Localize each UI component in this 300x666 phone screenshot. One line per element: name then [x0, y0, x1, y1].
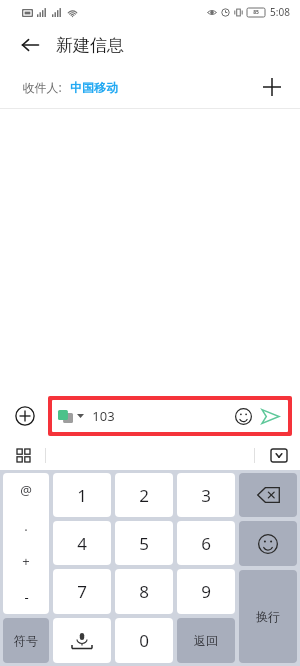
staticText: 6 [201, 532, 211, 555]
button[interactable] [53, 618, 111, 663]
staticText: 中国移动 [70, 80, 118, 95]
staticText: 7 [77, 580, 87, 603]
staticText: 0 [139, 629, 149, 652]
button[interactable]: 6 [177, 521, 235, 565]
staticText: 4 [77, 532, 87, 555]
button[interactable]: Keyboard layouts [10, 442, 36, 468]
button[interactable]: 8 [115, 569, 173, 614]
staticText: 收件人: [22, 79, 62, 95]
button[interactable]: 103 [52, 400, 288, 432]
staticText: 9 [201, 580, 211, 603]
button[interactable]: Attach [8, 399, 42, 433]
button[interactable]: 返回 [177, 618, 235, 663]
staticText: 5:08 [270, 5, 290, 19]
button[interactable]: @ [3, 473, 49, 614]
button[interactable]: Hide keyboard [266, 442, 292, 468]
staticText: 1 [77, 484, 87, 507]
staticText: 返回 [194, 633, 218, 648]
button[interactable]: Emoji [239, 521, 297, 566]
staticText: 8 [139, 580, 149, 603]
button[interactable]: 符号 [3, 618, 49, 663]
button[interactable]: Add recipient [256, 71, 288, 103]
other: Emoji [258, 534, 278, 554]
staticText: + [22, 552, 30, 570]
staticText: 5 [139, 532, 149, 555]
other: Backspace [257, 487, 280, 503]
button[interactable]: 1 [53, 473, 111, 517]
button[interactable]: 2 [115, 473, 173, 517]
staticText: 103 [92, 407, 115, 425]
staticText: @ [20, 481, 32, 499]
button[interactable]: 7 [53, 569, 111, 614]
staticText: 换行 [256, 609, 280, 624]
button[interactable]: 3 [177, 473, 235, 517]
button[interactable]: Back [16, 31, 44, 59]
button[interactable]: 0 [115, 618, 173, 663]
button[interactable]: Send [258, 404, 282, 428]
button[interactable]: Emoji [231, 404, 255, 428]
staticText: 新建信息 [56, 35, 124, 56]
staticText: 3 [201, 484, 211, 507]
staticText: - [24, 588, 29, 606]
button[interactable]: 5 [115, 521, 173, 565]
staticText: 符号 [14, 633, 38, 648]
staticText: 2 [139, 484, 149, 507]
staticText: 85 [253, 9, 259, 16]
staticText: . [24, 517, 28, 535]
button[interactable]: Backspace [239, 473, 297, 517]
button[interactable]: 换行 [239, 570, 297, 663]
button[interactable]: 4 [53, 521, 111, 565]
button[interactable]: 9 [177, 569, 235, 614]
